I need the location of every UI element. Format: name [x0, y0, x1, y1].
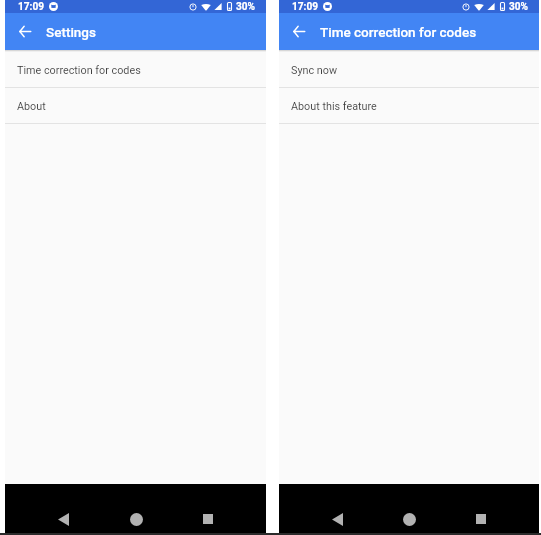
button[interactable]: Back [46, 505, 78, 533]
staticText: Settings [46, 24, 96, 40]
staticText: 30% [236, 1, 256, 13]
staticText: 17:09 [292, 1, 319, 13]
staticText: About [17, 100, 46, 113]
button[interactable]: Recent apps [466, 505, 498, 533]
button[interactable]: Time correction for codes [5, 52, 266, 88]
button[interactable]: Home [393, 505, 425, 533]
button[interactable]: Back [320, 505, 352, 533]
button[interactable]: About this feature [279, 88, 539, 124]
staticText: Sync now [291, 64, 338, 77]
button[interactable]: Home [120, 505, 152, 533]
staticText: 17:09 [18, 1, 45, 13]
button[interactable]: Navigate up [279, 13, 316, 50]
button[interactable]: About [5, 88, 266, 124]
staticText: About this feature [291, 100, 377, 113]
staticText: Time correction for codes [320, 24, 477, 40]
button[interactable]: Sync now [279, 52, 539, 88]
staticText: 30% [509, 1, 529, 13]
button[interactable]: Navigate up [5, 13, 42, 50]
staticText: Time correction for codes [17, 64, 141, 77]
button[interactable]: Recent apps [193, 505, 225, 533]
